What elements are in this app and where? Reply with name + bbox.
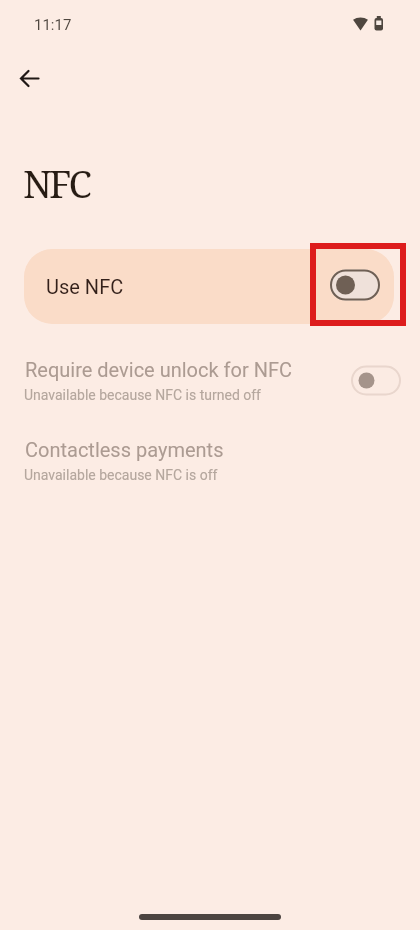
button[interactable] [322, 261, 388, 309]
staticText: Unavailable because NFC is turned off [24, 387, 261, 403]
staticText: Contactless payments [25, 438, 224, 461]
button[interactable] [343, 357, 409, 405]
staticText: Unavailable because NFC is off [24, 467, 218, 483]
button[interactable]: Use NFC [24, 249, 394, 324]
button[interactable]: Contactless payments [0, 424, 420, 496]
button[interactable] [6, 55, 54, 103]
staticText: 11:17 [34, 16, 72, 34]
button[interactable]: Require device unlock for NFC [0, 344, 420, 416]
staticText: Require device unlock for NFC [25, 358, 293, 381]
staticText: Use NFC [46, 275, 124, 298]
staticText: NFC [23, 157, 89, 209]
